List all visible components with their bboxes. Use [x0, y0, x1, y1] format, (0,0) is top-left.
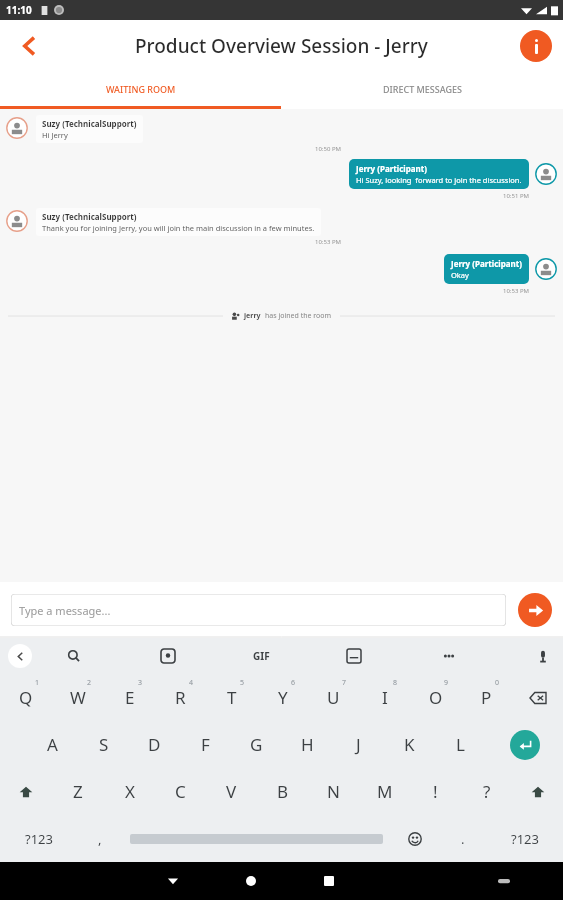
staticText: H: [301, 733, 314, 756]
button[interactable]: Emoji: [389, 815, 440, 862]
button[interactable]: C: [155, 768, 206, 815]
button[interactable]: D: [129, 721, 180, 768]
button[interactable]: K: [384, 721, 435, 768]
staticText: J: [356, 733, 361, 756]
button[interactable]: Suzy (TechnicalSupport): [42, 118, 137, 140]
button[interactable]: Shift: [0, 768, 52, 815]
staticText: !: [433, 780, 438, 803]
staticText: WAITING ROOM: [106, 83, 176, 95]
button[interactable]: U: [308, 674, 359, 721]
button[interactable]: Translate: [340, 642, 368, 670]
button[interactable]: S: [78, 721, 129, 768]
staticText: Y: [278, 686, 288, 709]
staticText: jerry: [244, 311, 261, 321]
staticText: 0: [495, 678, 500, 688]
staticText: 6: [291, 678, 296, 688]
staticText: B: [277, 780, 289, 803]
staticText: 10:53 PM: [315, 238, 341, 246]
staticText: A: [47, 733, 58, 756]
button[interactable]: G: [231, 721, 282, 768]
button[interactable]: ?123: [0, 815, 77, 862]
button[interactable]: H: [282, 721, 333, 768]
button[interactable]: Z: [52, 768, 104, 815]
button[interactable]: Voice input: [529, 642, 557, 670]
button[interactable]: L: [435, 721, 486, 768]
button[interactable]: More options: [435, 642, 463, 670]
button[interactable]: M: [359, 768, 410, 815]
button[interactable]: Backspace: [512, 674, 563, 721]
button[interactable]: R: [155, 674, 206, 721]
staticText: 9: [444, 678, 449, 688]
staticText: ?123: [511, 830, 539, 848]
staticText: S: [99, 733, 109, 756]
button[interactable]: I: [359, 674, 410, 721]
staticText: P: [481, 686, 492, 709]
staticText: Product Overview Session - Jerry: [135, 33, 428, 59]
button[interactable]: DIRECT MESSAGES: [281, 72, 563, 106]
button[interactable]: Stickers: [154, 642, 182, 670]
staticText: F: [201, 733, 210, 756]
staticText: Thank you for joining Jerry, you will jo…: [42, 223, 315, 233]
staticText: I: [382, 686, 388, 709]
staticText: R: [175, 686, 186, 709]
staticText: C: [175, 780, 186, 803]
button[interactable]: Search: [60, 642, 88, 670]
button[interactable]: Q: [0, 674, 52, 721]
button[interactable]: WAITING ROOM: [0, 72, 281, 106]
button[interactable]: Collapse toolbar: [8, 644, 32, 668]
staticText: DIRECT MESSAGES: [383, 83, 462, 95]
staticText: Type a message...: [19, 603, 111, 618]
button[interactable]: GIF: [249, 645, 274, 667]
button[interactable]: J: [333, 721, 384, 768]
button[interactable]: T: [206, 674, 257, 721]
button[interactable]: Jerry (Participant): [356, 163, 522, 185]
button[interactable]: Type a message...: [11, 594, 506, 626]
button[interactable]: V: [206, 768, 257, 815]
staticText: Jerry (Participant): [451, 258, 522, 269]
button[interactable]: Home: [236, 866, 266, 896]
button[interactable]: ?: [461, 768, 512, 815]
staticText: Hi Suzy, looking forward to join the dis…: [356, 175, 522, 185]
button[interactable]: F: [180, 721, 231, 768]
staticText: K: [404, 733, 415, 756]
staticText: X: [125, 780, 135, 803]
button[interactable]: B: [257, 768, 308, 815]
button[interactable]: P: [461, 674, 512, 721]
button[interactable]: Y: [257, 674, 308, 721]
staticText: 1: [35, 678, 40, 688]
button[interactable]: Space: [123, 815, 389, 862]
button[interactable]: O: [410, 674, 461, 721]
button[interactable]: ,: [77, 815, 123, 862]
button[interactable]: !: [410, 768, 461, 815]
staticText: has joined the room: [265, 311, 332, 321]
button[interactable]: Jerry (Participant): [451, 258, 522, 280]
staticText: 5: [240, 678, 245, 688]
button[interactable]: Recents: [314, 866, 344, 896]
button[interactable]: Enter: [510, 730, 540, 760]
button[interactable]: W: [52, 674, 104, 721]
button[interactable]: .: [440, 815, 486, 862]
staticText: 10:53 PM: [503, 287, 529, 295]
button[interactable]: Shift: [512, 768, 563, 815]
button[interactable]: Hide keyboard: [158, 866, 188, 896]
button[interactable]: ?123: [486, 815, 563, 862]
staticText: 11:10: [6, 3, 32, 17]
staticText: Suzy (TechnicalSupport): [42, 211, 137, 222]
button[interactable]: Send: [518, 593, 552, 627]
staticText: N: [327, 780, 340, 803]
staticText: GIF: [253, 649, 270, 663]
button[interactable]: Session info: [520, 30, 552, 62]
staticText: G: [250, 733, 263, 756]
staticText: ?123: [25, 830, 53, 848]
button[interactable]: A: [27, 721, 78, 768]
staticText: Suzy (TechnicalSupport): [42, 118, 137, 129]
button[interactable]: E: [104, 674, 155, 721]
button[interactable]: Back: [10, 26, 50, 66]
button[interactable]: Keyboard layout: [491, 868, 517, 894]
button[interactable]: N: [308, 768, 359, 815]
button[interactable]: Suzy (TechnicalSupport): [42, 211, 315, 233]
staticText: W: [70, 686, 86, 709]
button[interactable]: X: [104, 768, 155, 815]
staticText: T: [227, 686, 237, 709]
staticText: 10:50 PM: [315, 145, 341, 153]
